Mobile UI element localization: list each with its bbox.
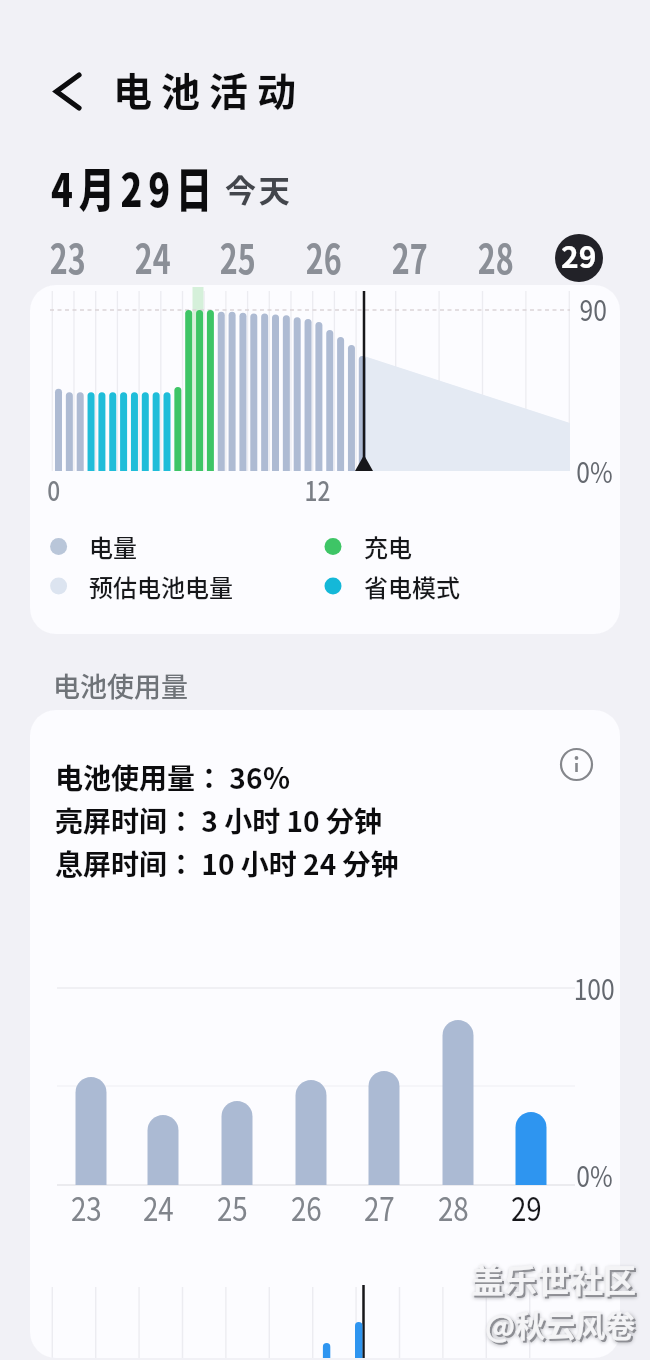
staticText: 电池活动 [113,61,306,117]
staticText: 90 [579,287,608,329]
staticText: 省电模式 [364,569,460,604]
button[interactable] [554,742,598,786]
button[interactable]: 29 [555,234,603,282]
staticText: 29 [561,234,597,276]
staticText: 息屏时间： 10 小时 24 分钟 [55,843,399,884]
staticText: 26 [291,1183,322,1231]
button[interactable]: 26 [292,217,356,297]
staticText: 今天 [225,166,293,211]
button[interactable]: 24 [121,217,185,297]
staticText: 电池使用量： 36％ [55,757,291,798]
staticText: 23 [50,228,86,286]
staticText: 0 [47,470,61,509]
staticText: 28 [438,1183,469,1231]
staticText: 25 [217,1183,248,1231]
staticText: 27 [392,228,428,286]
staticText: 亮屏时间： 3 小时 10 分钟 [55,800,382,841]
staticText: 盖乐世社区 [473,1257,638,1305]
staticText: 0% [576,449,613,491]
staticText: 充电 [364,529,412,564]
staticText: 26 [306,228,342,286]
staticText: 电池使用量 [53,666,188,705]
button[interactable] [44,68,90,114]
staticText: 28 [478,228,514,286]
button[interactable]: 28 [464,217,528,297]
staticText: 23 [71,1183,102,1231]
staticText: @秋云风卷 [487,1304,638,1347]
button[interactable]: 27 [378,217,442,297]
staticText: 预估电池电量 [89,569,233,604]
staticText: 12 [304,470,330,509]
staticText: 0% [576,1153,613,1195]
staticText: 24 [135,228,171,286]
staticText: 27 [364,1183,395,1231]
staticText: 25 [220,228,256,286]
button[interactable]: 23 [36,217,100,297]
staticText: 盖乐世社区 [471,1255,636,1303]
staticText: 100 [574,966,615,1008]
button[interactable]: 25 [206,217,270,297]
staticText: 电量 [89,529,137,564]
staticText: @秋云风卷 [485,1302,636,1345]
staticText: 4月29日 [51,154,218,220]
staticText: 29 [511,1183,542,1231]
staticText: 24 [143,1183,174,1231]
